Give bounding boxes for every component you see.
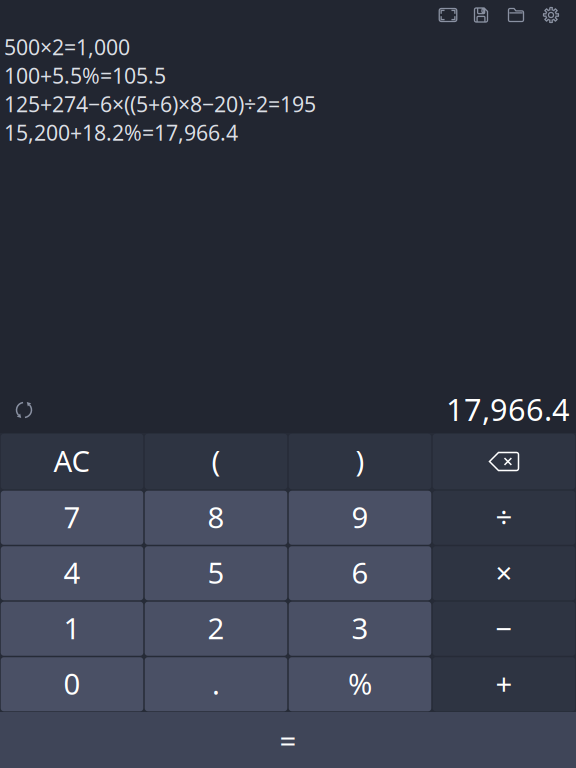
staticText: 1 (63, 608, 80, 647)
button[interactable]: ( (144, 433, 288, 490)
staticText: × (495, 553, 512, 592)
staticText: − (495, 608, 512, 647)
button[interactable]: 8 (144, 490, 288, 545)
button[interactable]: 3 (288, 601, 432, 656)
staticText: 500×2=1,000 (4, 33, 130, 61)
button[interactable]: Settings (535, 0, 567, 30)
staticText: 8 (207, 497, 224, 536)
staticText: 100+5.5%=105.5 (4, 61, 166, 90)
button[interactable]: Save (465, 0, 497, 30)
staticText: ( (211, 441, 220, 480)
button[interactable]: 7 (0, 490, 144, 545)
button[interactable]: Display (432, 0, 464, 30)
staticText: 2 (207, 608, 224, 647)
button[interactable]: Delete (432, 433, 576, 490)
button[interactable]: 4 (0, 545, 144, 601)
staticText: 6 (351, 553, 368, 592)
button[interactable]: 6 (288, 545, 432, 601)
staticText: 5 (207, 553, 224, 592)
button[interactable]: 1 (0, 601, 144, 656)
staticText: 125+274−6×((5+6)×8−20)÷2=195 (4, 90, 316, 118)
button[interactable]: Open (500, 0, 532, 30)
button[interactable]: − (432, 601, 576, 656)
button[interactable]: = (0, 712, 576, 768)
staticText: ÷ (495, 497, 512, 536)
staticText: 4 (63, 553, 80, 592)
staticText: 0 (63, 664, 80, 703)
staticText: = (279, 720, 296, 759)
button[interactable]: Clear history (5, 391, 43, 429)
staticText: . (212, 664, 220, 703)
button[interactable]: 9 (288, 490, 432, 545)
button[interactable]: AC (0, 433, 144, 490)
staticText: % (348, 664, 372, 703)
staticText: + (495, 664, 512, 703)
staticText: 9 (351, 497, 368, 536)
button[interactable]: + (432, 656, 576, 712)
staticText: 15,200+18.2%=17,966.4 (4, 118, 238, 147)
button[interactable]: 0 (0, 656, 144, 712)
staticText: 17,966.4 (446, 389, 570, 429)
button[interactable]: ÷ (432, 490, 576, 545)
button[interactable]: 2 (144, 601, 288, 656)
button[interactable]: % (288, 656, 432, 712)
button[interactable]: × (432, 545, 576, 601)
button[interactable]: 5 (144, 545, 288, 601)
button[interactable]: . (144, 656, 288, 712)
staticText: 3 (351, 608, 368, 647)
staticText: ) (355, 441, 364, 480)
button[interactable]: ) (288, 433, 432, 490)
staticText: AC (53, 441, 90, 480)
staticText: 7 (63, 497, 80, 536)
